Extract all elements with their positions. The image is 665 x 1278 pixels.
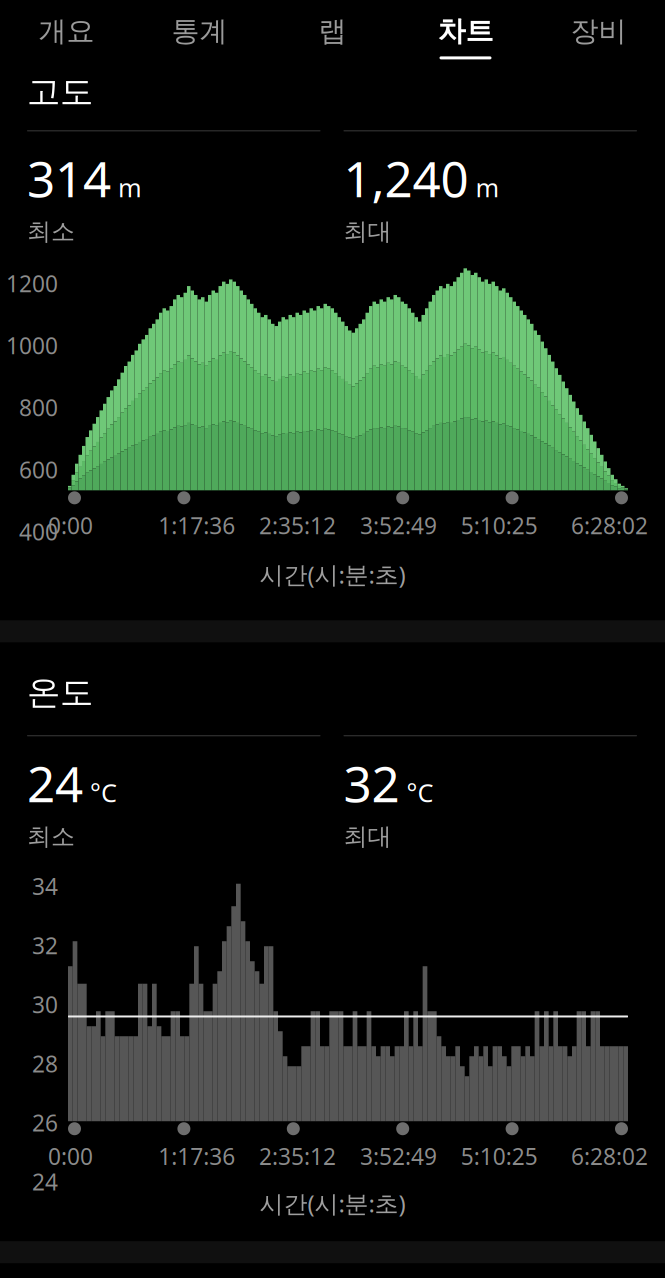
- staticText: 최소: [27, 822, 75, 851]
- staticText: 1:17:36: [158, 1141, 235, 1171]
- staticText: 개요: [38, 14, 94, 48]
- staticText: 26: [32, 1108, 58, 1138]
- staticText: 28: [32, 1048, 58, 1079]
- staticText: 최소: [27, 217, 75, 246]
- staticText: 1200: [6, 268, 58, 298]
- staticText: 3:52:49: [360, 1141, 437, 1171]
- staticText: m: [475, 171, 499, 204]
- button[interactable]: 랩: [266, 0, 399, 65]
- staticText: 6:28:02: [571, 510, 648, 540]
- staticText: 최대: [343, 822, 391, 851]
- staticText: 400: [19, 517, 58, 547]
- staticText: m: [118, 171, 142, 204]
- staticText: 3:52:49: [360, 510, 437, 540]
- staticText: 0:00: [48, 510, 93, 540]
- staticText: 800: [19, 392, 58, 423]
- staticText: 30: [32, 989, 58, 1019]
- staticText: 최대: [343, 217, 391, 246]
- staticText: 차트: [437, 14, 493, 48]
- staticText: 장비: [570, 14, 626, 48]
- button[interactable]: 개요: [0, 0, 133, 65]
- staticText: 1000: [6, 330, 58, 360]
- button[interactable]: 통계: [133, 0, 266, 65]
- staticText: 34: [32, 871, 58, 901]
- staticText: 온도: [27, 672, 93, 713]
- staticText: 24: [27, 750, 83, 816]
- staticText: 1:17:36: [158, 510, 235, 540]
- staticText: 통계: [171, 14, 227, 48]
- staticText: 0:00: [48, 1141, 93, 1171]
- staticText: 1,240: [343, 145, 468, 211]
- staticText: 314: [27, 145, 111, 211]
- staticText: 600: [19, 455, 58, 485]
- staticText: 시간(시:분:초): [259, 558, 405, 590]
- staticText: 5:10:25: [461, 510, 538, 540]
- staticText: 32: [343, 750, 399, 816]
- staticText: °C: [90, 775, 117, 809]
- staticText: 고도: [27, 71, 93, 112]
- staticText: 랩: [318, 14, 346, 48]
- button[interactable]: 장비: [532, 0, 665, 65]
- staticText: 24: [32, 1167, 58, 1197]
- staticText: 2:35:12: [259, 1141, 336, 1171]
- button[interactable]: 차트: [399, 0, 532, 65]
- staticText: 6:28:02: [571, 1141, 648, 1171]
- staticText: 5:10:25: [461, 1141, 538, 1171]
- staticText: 시간(시:분:초): [259, 1187, 405, 1219]
- staticText: °C: [406, 775, 433, 809]
- staticText: 2:35:12: [259, 510, 336, 540]
- staticText: 32: [32, 930, 58, 960]
